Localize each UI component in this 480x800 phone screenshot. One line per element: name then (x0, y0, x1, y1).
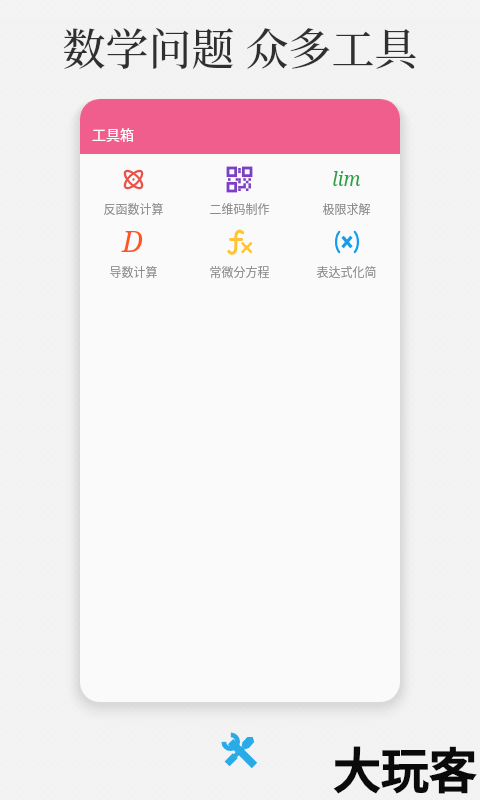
button[interactable]: lim (293, 165, 400, 217)
staticText: 表达式化简 (316, 263, 377, 280)
staticText: 工具箱 (92, 124, 134, 144)
button[interactable]: 二维码制作 (186, 165, 293, 217)
staticText: 导数计算 (109, 263, 158, 280)
staticText: 大玩客 (333, 732, 478, 800)
staticText: D (122, 221, 144, 260)
button[interactable]: 反函数计算 (80, 165, 186, 217)
button[interactable]: D (80, 228, 186, 280)
staticText: 常微分方程 (209, 263, 270, 280)
staticText: 二维码制作 (209, 200, 270, 217)
staticText: 反函数计算 (103, 200, 164, 217)
button[interactable]: Tools (220, 731, 260, 771)
staticText: 数学问题 众多工具 (0, 16, 480, 78)
staticText: 极限求解 (322, 200, 371, 217)
staticText: lim (332, 166, 361, 192)
button[interactable]: 常微分方程 (186, 228, 293, 280)
button[interactable]: 表达式化简 (293, 228, 400, 280)
